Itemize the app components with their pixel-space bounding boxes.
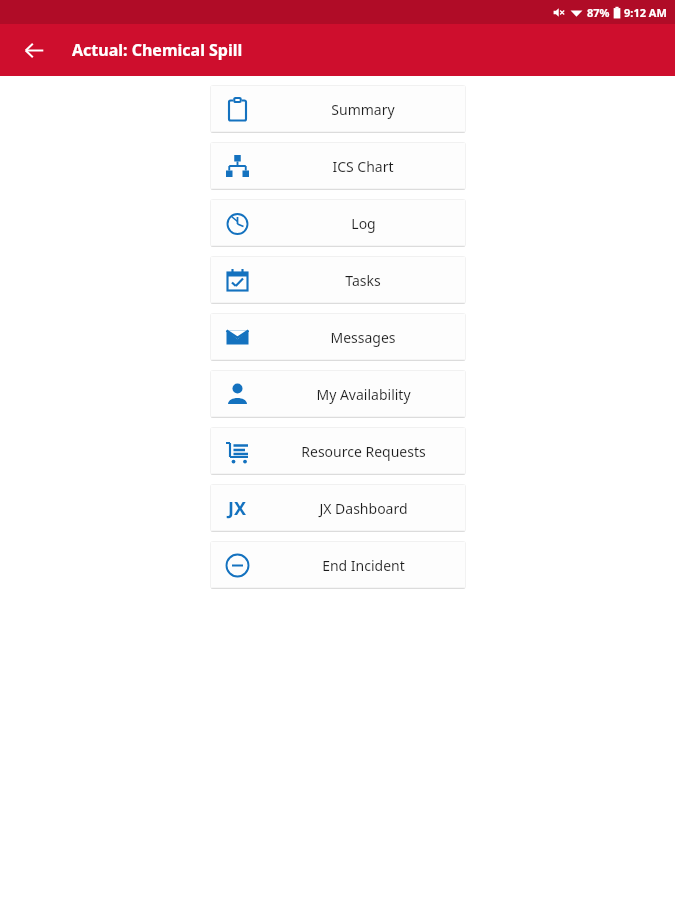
staticText: My Availability xyxy=(316,385,411,404)
staticText: End Incident xyxy=(322,556,405,575)
staticText: ICS Chart xyxy=(332,157,394,176)
button[interactable]: ICS Chart xyxy=(210,142,466,190)
staticText: Messages xyxy=(330,328,396,347)
button[interactable]: Tasks xyxy=(210,256,466,304)
button[interactable]: Messages xyxy=(210,313,466,361)
button[interactable]: JX xyxy=(210,484,466,532)
staticText: JX Dashboard xyxy=(319,499,408,518)
staticText: JX xyxy=(228,496,247,521)
button[interactable]: Back xyxy=(14,30,54,70)
staticText: Summary xyxy=(331,100,395,119)
button[interactable]: My Availability xyxy=(210,370,466,418)
button[interactable]: Log xyxy=(210,199,466,247)
staticText: 9:12 AM xyxy=(624,5,667,20)
staticText: 87% xyxy=(587,5,610,20)
staticText: Tasks xyxy=(345,271,381,290)
button[interactable]: Resource Requests xyxy=(210,427,466,475)
staticText: Actual: Chemical Spill xyxy=(72,39,243,61)
staticText: Log xyxy=(351,214,376,233)
button[interactable]: End Incident xyxy=(210,541,466,589)
staticText: Resource Requests xyxy=(301,442,426,461)
button[interactable]: Summary xyxy=(210,85,466,133)
